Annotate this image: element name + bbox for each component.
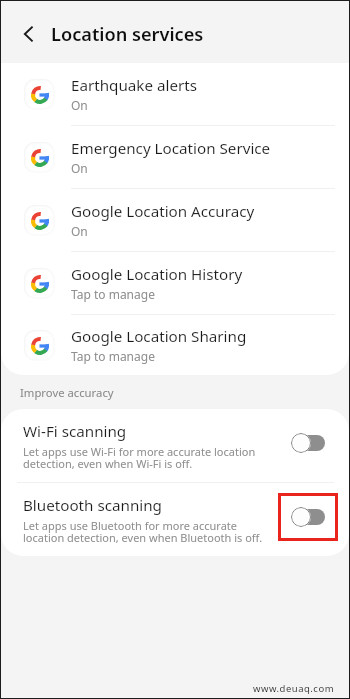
- button[interactable]: Google Location History: [1, 252, 349, 314]
- button[interactable]: Back: [15, 20, 43, 48]
- button[interactable]: Toggle Wi-Fi scanning: [291, 433, 325, 453]
- staticText: Let apps use Wi-Fi for more accurate loc…: [23, 444, 256, 471]
- staticText: Tap to manage: [71, 348, 155, 364]
- staticText: Location services: [51, 22, 204, 47]
- staticText: Google Location History: [71, 264, 243, 285]
- button[interactable]: Emergency Location Service: [1, 126, 349, 188]
- staticText: Improve accuracy: [20, 385, 114, 400]
- button[interactable]: Earthquake alerts: [1, 63, 349, 125]
- button[interactable]: Google Location Sharing: [1, 315, 349, 375]
- staticText: On: [71, 160, 88, 176]
- button[interactable]: Google Location Accuracy: [1, 189, 349, 251]
- staticText: Let apps use Bluetooth for more accurate…: [23, 518, 263, 545]
- staticText: Emergency Location Service: [71, 138, 271, 159]
- staticText: www.deuaq.com: [253, 682, 335, 695]
- staticText: Tap to manage: [71, 286, 155, 302]
- button[interactable]: Toggle Bluetooth scanning: [291, 507, 325, 527]
- staticText: Earthquake alerts: [71, 75, 198, 96]
- staticText: Wi-Fi scanning: [23, 421, 127, 442]
- staticText: Bluetooth scanning: [23, 495, 162, 516]
- staticText: On: [71, 97, 88, 113]
- button[interactable]: Wi-Fi scanning: [1, 409, 349, 482]
- button[interactable]: Bluetooth scanning: [1, 483, 349, 556]
- staticText: Google Location Sharing: [71, 326, 247, 347]
- staticText: On: [71, 223, 88, 239]
- staticText: Google Location Accuracy: [71, 201, 255, 222]
